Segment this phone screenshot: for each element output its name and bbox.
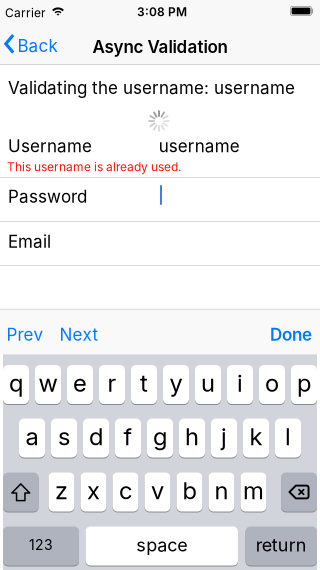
button[interactable]: n [208,472,234,511]
button[interactable]: l [275,418,301,457]
button[interactable]: q [3,365,29,404]
staticText: r [107,368,116,397]
staticText: c [119,476,132,505]
button[interactable]: a [19,418,45,457]
staticText: space [136,534,187,556]
staticText: 3:08 PM [137,5,187,19]
button[interactable]: d [83,418,109,457]
button[interactable]: i [227,365,253,404]
staticText: y [169,368,182,397]
staticText: h [185,422,199,451]
button[interactable]: f [115,418,141,457]
staticText: a [25,422,38,451]
staticText: v [151,476,164,505]
button[interactable]: z [48,472,74,511]
button[interactable]: Prev [6,324,43,345]
staticText: t [140,368,148,397]
button[interactable]: g [147,418,173,457]
button[interactable]: j [211,418,237,457]
button[interactable]: Shift [3,472,38,511]
staticText: d [89,422,103,451]
staticText: b [182,476,196,505]
button[interactable]: space [85,526,238,565]
staticText: Async Validation [92,36,227,57]
button[interactable]: return [245,526,317,565]
staticText: f [123,422,132,451]
staticText: z [55,476,68,505]
staticText: s [58,422,70,451]
button[interactable]: y [163,365,189,404]
staticText: Username [8,136,92,156]
staticText: return [256,534,307,556]
button[interactable]: o [259,365,285,404]
button[interactable]: e [67,365,93,404]
staticText: m [243,476,264,505]
staticText: Prev [6,324,43,345]
staticText: Carrier [5,5,46,20]
staticText: Email [8,231,51,252]
button[interactable]: Delete [281,472,317,511]
staticText: l [285,422,291,451]
button[interactable]: Done [270,324,312,345]
button[interactable]: v [144,472,170,511]
button[interactable]: Back [0,20,57,56]
button[interactable]: m [240,472,266,511]
staticText: x [87,476,100,505]
staticText: Done [270,324,312,345]
button[interactable]: p [291,365,317,404]
staticText: n [214,476,228,505]
button[interactable]: b [176,472,202,511]
button[interactable]: r [99,365,125,404]
staticText: e [73,368,87,397]
staticText: p [297,368,311,397]
button[interactable]: k [243,418,269,457]
staticText: Password [8,186,87,207]
staticText: Back [17,35,57,56]
button[interactable]: w [35,365,61,404]
staticText: w [38,368,57,397]
staticText: i [237,368,243,397]
staticText: j [221,422,227,451]
staticText: q [9,368,23,397]
staticText: 123 [29,536,53,553]
button[interactable]: Numbers [3,526,79,565]
button[interactable]: c [112,472,138,511]
staticText: This username is already used. [7,160,181,174]
button[interactable]: Next [59,324,98,345]
staticText: k [249,422,262,451]
staticText: u [201,368,215,397]
button[interactable]: h [179,418,205,457]
button[interactable]: u [195,365,221,404]
staticText: username [159,136,240,156]
button[interactable]: s [51,418,77,457]
button[interactable]: t [131,365,157,404]
staticText: g [153,422,167,451]
staticText: Validating the username: username [8,77,295,98]
staticText: Next [59,324,98,345]
staticText: o [265,368,279,397]
button[interactable]: x [80,472,106,511]
